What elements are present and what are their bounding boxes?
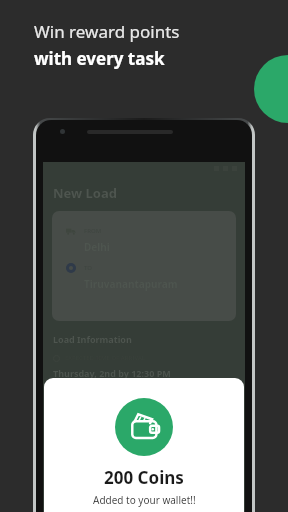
- button[interactable]: Wallet reward: [115, 398, 173, 456]
- staticText: New Load: [53, 184, 117, 202]
- staticText: 200 Coins: [104, 466, 184, 489]
- staticText: Load Information: [53, 333, 132, 345]
- staticText: Delhi: [84, 240, 110, 254]
- staticText: Win reward points: [34, 20, 180, 43]
- staticText: with every task: [34, 47, 165, 70]
- staticText: Added to your wallet!!: [93, 493, 196, 507]
- staticText: Thursday, 2nd by 12:30 PM: [53, 367, 171, 379]
